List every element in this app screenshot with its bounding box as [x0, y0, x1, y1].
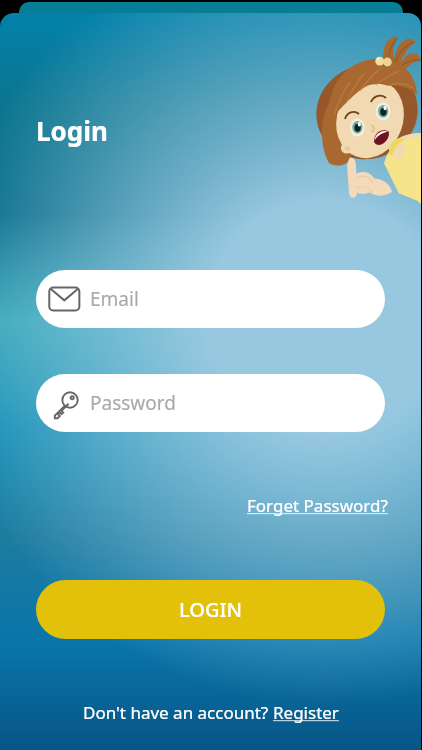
button[interactable]: Email	[36, 270, 385, 328]
staticText: Don't have an account?	[83, 701, 273, 724]
staticText: Password	[90, 390, 176, 416]
staticText: Email	[90, 286, 139, 312]
other: Email	[48, 283, 80, 315]
other: Password	[48, 387, 80, 419]
button[interactable]: LOGIN	[36, 580, 385, 639]
staticText: Register	[273, 701, 339, 724]
staticText: LOGIN	[179, 596, 243, 623]
button[interactable]: Password	[36, 374, 385, 432]
button[interactable]: Register	[273, 701, 339, 724]
staticText: Forget Password?	[247, 494, 388, 517]
button[interactable]: Forget Password?	[241, 490, 394, 521]
staticText: Login	[36, 113, 108, 148]
